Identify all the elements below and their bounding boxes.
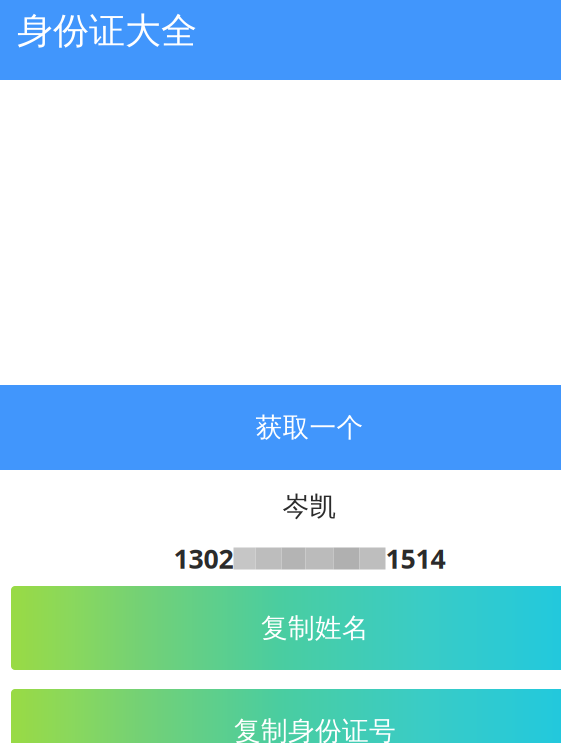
button[interactable]: 复制身份证号 [0, 689, 561, 743]
staticText: 1302 [173, 541, 233, 576]
button[interactable]: 获取一个 [0, 385, 561, 470]
staticText: 1514 [385, 541, 445, 576]
staticText: 身份证大全 [17, 9, 197, 53]
staticText: 复制身份证号 [234, 715, 396, 743]
staticText: 复制姓名 [261, 612, 369, 644]
button[interactable]: 复制姓名 [0, 586, 561, 670]
staticText: 岑凯 [282, 490, 336, 523]
staticText: 获取一个 [255, 411, 363, 444]
